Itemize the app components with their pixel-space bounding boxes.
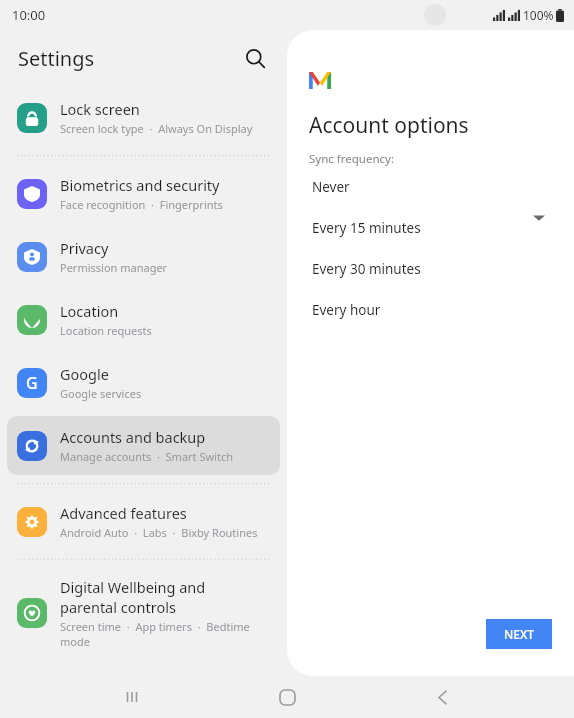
button[interactable]: Advanced features bbox=[7, 492, 280, 551]
staticText: NEXT bbox=[504, 626, 535, 642]
staticText: Account options bbox=[309, 111, 469, 140]
staticText: Privacy bbox=[60, 238, 270, 258]
staticText: Manage accounts · Smart Switch bbox=[60, 449, 233, 464]
staticText: Never bbox=[312, 178, 350, 196]
staticText: 10:00 bbox=[12, 6, 46, 24]
staticText: Face recognition · Fingerprints bbox=[60, 197, 223, 212]
staticText: Biometrics and security bbox=[60, 175, 270, 195]
staticText: Android Auto · Labs · Bixby Routines bbox=[60, 525, 258, 540]
staticText: Location bbox=[60, 301, 270, 321]
staticText: Screen lock type · Always On Display bbox=[60, 121, 253, 136]
staticText: Settings bbox=[18, 45, 95, 72]
button[interactable]: Digital Wellbeing and parental controls bbox=[7, 568, 280, 658]
button[interactable]: Recent apps bbox=[109, 676, 155, 718]
staticText: Digital Wellbeing and parental controls bbox=[60, 577, 265, 617]
button[interactable]: Every 15 minutes bbox=[299, 207, 520, 248]
staticText: Location requests bbox=[60, 323, 152, 338]
staticText: Lock screen bbox=[60, 99, 270, 119]
staticText: Every hour bbox=[312, 301, 381, 319]
staticText: Screen time · App timers · Bedtime mode bbox=[60, 619, 270, 649]
staticText: G bbox=[26, 372, 38, 394]
button[interactable]: Location bbox=[7, 290, 280, 349]
staticText: Every 30 minutes bbox=[312, 260, 421, 278]
staticText: Every 15 minutes bbox=[312, 219, 421, 237]
button[interactable]: Search bbox=[235, 38, 275, 78]
button[interactable]: Biometrics and security bbox=[7, 164, 280, 223]
staticText: 100% bbox=[523, 7, 554, 23]
button[interactable]: NEXT bbox=[486, 619, 552, 649]
button[interactable]: G bbox=[7, 353, 280, 412]
staticText: Advanced features bbox=[60, 503, 270, 523]
button[interactable]: Every 30 minutes bbox=[299, 248, 520, 289]
staticText: Permission manager bbox=[60, 260, 168, 275]
staticText: Google services bbox=[60, 386, 142, 401]
staticText: Google bbox=[60, 364, 270, 384]
button[interactable]: Back bbox=[419, 676, 465, 718]
staticText: Sync frequency: bbox=[309, 151, 394, 167]
button[interactable]: Lock screen bbox=[7, 88, 280, 147]
button[interactable]: Privacy bbox=[7, 227, 280, 286]
button[interactable]: Accounts and backup bbox=[7, 416, 280, 475]
button[interactable]: Home bbox=[264, 676, 310, 718]
button[interactable]: Every hour bbox=[299, 289, 520, 330]
staticText: Accounts and backup bbox=[60, 427, 270, 447]
button[interactable]: Never bbox=[299, 166, 520, 207]
